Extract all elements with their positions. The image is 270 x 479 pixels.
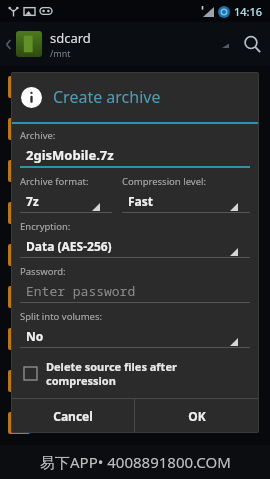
staticText: 2gisMobile.7z: [26, 146, 114, 164]
staticText: Data (AES-256): [26, 238, 112, 254]
staticText: 易下APP• 4008891800.COM: [40, 452, 231, 472]
staticText: Compression level:: [122, 175, 207, 188]
staticText: /mnt: [50, 47, 71, 59]
staticText: Archive format:: [20, 175, 89, 188]
button[interactable]: 7z: [20, 190, 112, 213]
staticText: Enter password: [26, 282, 136, 300]
staticText: OK: [188, 408, 206, 424]
staticText: 7z: [26, 193, 39, 209]
button[interactable]: Cancel: [11, 399, 134, 433]
staticText: Delete source files after compression: [46, 359, 177, 388]
button[interactable]: 2gisMobile.7z: [20, 144, 250, 168]
staticText: Encryption:: [20, 220, 71, 233]
button[interactable]: Enter password: [20, 280, 250, 303]
button[interactable]: Search: [234, 22, 270, 66]
staticText: Split into volumes:: [20, 310, 103, 323]
staticText: Archive:: [20, 129, 56, 142]
button[interactable]: Delete source files after compression: [20, 357, 250, 390]
staticText: Fast: [128, 193, 154, 209]
button[interactable]: Up: [0, 22, 16, 66]
button[interactable]: OK: [135, 399, 259, 433]
staticText: Cancel: [53, 408, 93, 424]
staticText: sdcard: [50, 29, 91, 47]
staticText: Password:: [20, 265, 66, 278]
button[interactable]: No: [20, 325, 250, 348]
button[interactable]: Fast: [122, 190, 250, 213]
staticText: No: [26, 328, 44, 344]
staticText: Create archive: [53, 86, 161, 108]
button[interactable]: Data (AES-256): [20, 235, 250, 258]
staticText: 14:16: [234, 4, 263, 19]
